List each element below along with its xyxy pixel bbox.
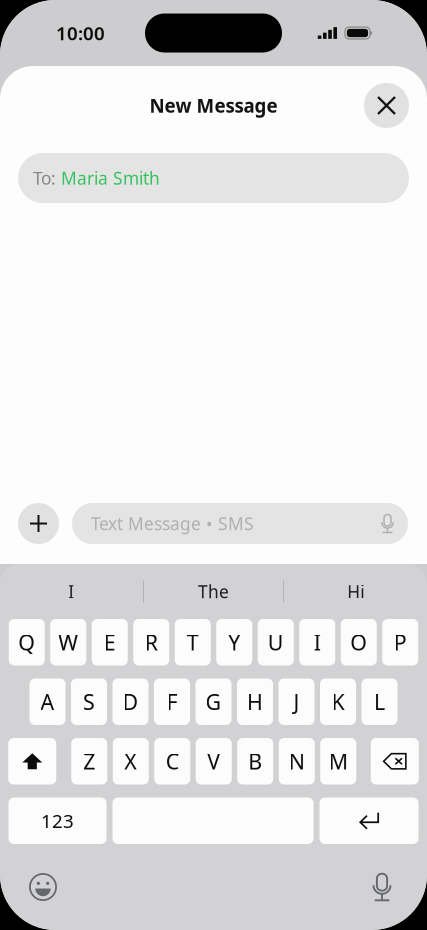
button[interactable]: D — [112, 678, 148, 725]
staticText: R — [145, 628, 158, 656]
staticText: A — [40, 688, 54, 716]
staticText: I — [68, 580, 74, 603]
button[interactable]: M — [320, 738, 356, 784]
button[interactable]: U — [258, 619, 294, 665]
staticText: D — [122, 688, 138, 716]
button[interactable]: Emoji — [21, 865, 65, 909]
button[interactable]: V — [196, 738, 232, 784]
button[interactable]: Y — [216, 619, 252, 665]
staticText: E — [104, 628, 116, 656]
button[interactable]: B — [237, 738, 273, 784]
staticText: Text Message • SMS — [91, 512, 254, 535]
staticText: H — [247, 688, 263, 716]
staticText: P — [394, 628, 407, 656]
button[interactable]: Q — [9, 619, 45, 665]
button[interactable]: The — [142, 564, 285, 619]
button[interactable]: I — [299, 619, 335, 665]
staticText: 10:00 — [56, 21, 105, 45]
button[interactable]: X — [113, 738, 149, 784]
staticText: Z — [83, 747, 95, 775]
staticText: Maria Smith — [61, 166, 160, 189]
staticText: S — [83, 688, 95, 716]
button[interactable]: L — [361, 678, 397, 725]
staticText: To: — [33, 166, 61, 189]
button[interactable]: P — [382, 619, 418, 665]
staticText: F — [166, 688, 177, 716]
staticText: X — [124, 747, 137, 775]
staticText: G — [205, 688, 221, 716]
staticText: W — [58, 628, 78, 656]
staticText: M — [329, 747, 348, 775]
staticText: Y — [228, 628, 240, 656]
staticText: 123 — [41, 808, 74, 833]
button[interactable]: Delete — [371, 738, 419, 784]
staticText: Hi — [347, 580, 364, 603]
button[interactable]: F — [154, 678, 190, 725]
button[interactable]: J — [278, 678, 314, 725]
button[interactable]: A — [29, 678, 65, 725]
button[interactable]: W — [50, 619, 86, 665]
button[interactable]: O — [341, 619, 377, 665]
button[interactable]: return — [319, 797, 418, 844]
button[interactable]: N — [279, 738, 315, 784]
staticText: New Message — [149, 93, 277, 118]
button[interactable]: H — [237, 678, 273, 725]
button[interactable]: E — [92, 619, 128, 665]
staticText: O — [350, 628, 367, 656]
button[interactable]: T — [175, 619, 211, 665]
staticText: T — [187, 628, 199, 656]
staticText: U — [268, 628, 284, 656]
button[interactable]: 123 — [8, 797, 106, 844]
staticText: J — [293, 688, 299, 716]
button[interactable]: Add attachment — [18, 503, 59, 544]
button[interactable]: Dictate — [360, 865, 404, 909]
staticText: K — [331, 688, 344, 716]
staticText: I — [314, 628, 321, 656]
button[interactable]: C — [154, 738, 190, 784]
button[interactable]: S — [71, 678, 107, 725]
staticText: B — [248, 747, 262, 775]
button[interactable]: Close — [364, 83, 409, 128]
button[interactable]: Z — [71, 738, 107, 784]
staticText: C — [166, 747, 179, 775]
staticText: N — [289, 747, 305, 775]
staticText: V — [207, 747, 220, 775]
staticText: Q — [18, 628, 35, 656]
button[interactable]: Hi — [285, 564, 427, 619]
button[interactable]: R — [133, 619, 169, 665]
button[interactable]: G — [195, 678, 231, 725]
button[interactable]: I — [0, 564, 142, 619]
button[interactable]: Shift — [8, 738, 56, 784]
button[interactable]: K — [320, 678, 356, 725]
staticText: L — [374, 688, 385, 716]
staticText: The — [198, 580, 229, 603]
